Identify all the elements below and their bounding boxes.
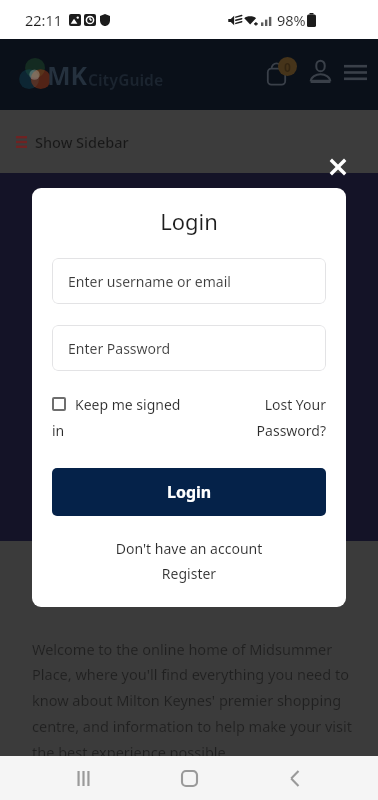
button[interactable]: Register	[52, 564, 326, 583]
staticText: Enter username or email	[68, 272, 231, 291]
staticText: Enter Password	[68, 339, 171, 358]
staticText: in	[52, 421, 65, 440]
button[interactable]: Enter username or email	[52, 258, 326, 304]
button[interactable]: Account	[306, 57, 334, 85]
staticText: Keep me signed	[75, 395, 181, 414]
staticText: Login	[167, 481, 212, 503]
button[interactable]: Keep me signed	[52, 390, 192, 448]
staticText: 22:11	[25, 10, 63, 30]
button[interactable]: Home	[166, 756, 212, 800]
button[interactable]: Close	[321, 150, 355, 184]
button[interactable]: Recents	[60, 756, 106, 800]
button[interactable]: Cart	[263, 53, 301, 85]
button[interactable]: Enter Password	[52, 325, 326, 371]
staticText: 98%	[277, 10, 306, 30]
button[interactable]: Show Sidebar	[0, 110, 378, 173]
button[interactable]: Lost Your Password?	[248, 390, 326, 448]
staticText: Don't have an account	[52, 539, 326, 558]
staticText: Login	[52, 206, 326, 236]
staticText: Welcome to the online home of Midsummer …	[32, 639, 352, 756]
staticText: Show Sidebar	[35, 132, 129, 152]
staticText: CityGuide	[88, 69, 164, 90]
button[interactable]: Login	[52, 468, 326, 516]
button[interactable]: Back	[272, 756, 318, 800]
staticText: 0	[284, 59, 291, 75]
button[interactable]: Menu	[340, 59, 370, 85]
staticText: Lost Your Password?	[248, 395, 326, 441]
staticText: MK	[47, 58, 88, 92]
